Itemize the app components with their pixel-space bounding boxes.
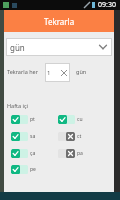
button[interactable]: pt (11, 115, 28, 124)
staticText: Hafta içi (7, 102, 29, 109)
button[interactable]: pa (58, 149, 75, 158)
staticText: pt (30, 116, 35, 123)
staticText: 1 (47, 69, 51, 77)
staticText: Tekrarla (44, 16, 75, 27)
button[interactable]: gün (6, 38, 112, 56)
staticText: ça (30, 150, 36, 157)
staticText: ct (77, 133, 82, 140)
staticText: 09:30 (98, 0, 116, 10)
button[interactable]: sa (11, 132, 28, 141)
button[interactable]: 1 (45, 63, 70, 82)
staticText: pe (30, 166, 36, 173)
staticText: pa (77, 150, 83, 157)
button[interactable]: cu (58, 115, 75, 124)
staticText: gün (76, 68, 87, 75)
button[interactable]: ça (11, 149, 28, 158)
staticText: Tekrarla her (7, 68, 38, 75)
staticText: gün (10, 42, 25, 53)
staticText: cu (77, 116, 83, 123)
staticText: sa (30, 133, 36, 140)
button[interactable]: ct (58, 132, 75, 141)
button[interactable]: pe (11, 165, 28, 174)
